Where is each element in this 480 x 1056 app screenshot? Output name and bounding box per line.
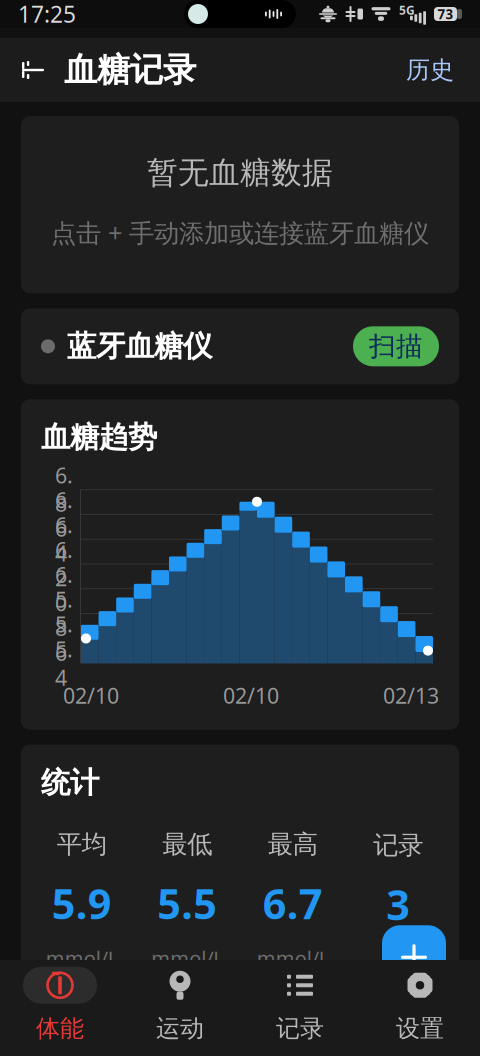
staticText: 设置 [396, 1014, 444, 1043]
staticText: 血糖记录 [64, 49, 196, 90]
button[interactable]: 记录 [240, 967, 360, 1043]
staticText: 最低 [162, 829, 212, 860]
staticText: 3 [386, 877, 410, 932]
button[interactable]: 历史 [398, 43, 462, 97]
staticText: 73 [437, 5, 453, 23]
staticText: 5.5 [157, 876, 217, 931]
staticText: 扫描 [369, 330, 423, 363]
staticText: 5.6 [55, 610, 73, 667]
staticText: 蓝牙血糖仪 [67, 328, 212, 364]
staticText: 体能 [36, 1014, 84, 1043]
staticText: 02/10 [63, 681, 119, 710]
staticText: 02/10 [223, 681, 279, 710]
staticText: 记录 [373, 830, 423, 861]
button[interactable]: 添加记录 [382, 925, 446, 989]
staticText: 6.7 [263, 876, 323, 931]
staticText: 5.9 [52, 876, 112, 931]
staticText: 02/13 [383, 681, 439, 710]
staticText: 17:25 [18, 0, 76, 29]
staticText: 次 [388, 946, 408, 970]
button[interactable]: 运动 [120, 967, 240, 1043]
button[interactable]: 体能 [0, 967, 120, 1043]
staticText: 5G [399, 2, 415, 18]
staticText: 历史 [406, 55, 454, 85]
staticText: 运动 [156, 1014, 204, 1043]
staticText: mmol/L [151, 945, 223, 971]
staticText: 5.8 [55, 585, 73, 642]
staticText: 暂无血糖数据 [147, 154, 333, 192]
staticText: 记录 [276, 1014, 324, 1043]
button[interactable]: 扫描 [353, 326, 439, 366]
staticText: 血糖趋势 [41, 419, 157, 455]
staticText: 6.2 [55, 536, 73, 592]
staticText: 6.8 [55, 461, 73, 518]
staticText: mmol/L [257, 945, 329, 971]
button[interactable]: 设置 [360, 967, 480, 1043]
staticText: 最高 [268, 829, 318, 860]
staticText: 平均 [57, 829, 107, 860]
staticText: 5.4 [55, 635, 73, 692]
staticText: 6.6 [55, 486, 73, 543]
button[interactable]: 返回 [10, 46, 56, 94]
staticText: 统计 [41, 765, 99, 801]
staticText: 6.0 [55, 560, 73, 617]
staticText: 6.4 [55, 511, 73, 567]
staticText: 点击 + 手动添加或连接蓝牙血糖仪 [51, 216, 429, 249]
staticText: mmol/L [46, 945, 118, 971]
